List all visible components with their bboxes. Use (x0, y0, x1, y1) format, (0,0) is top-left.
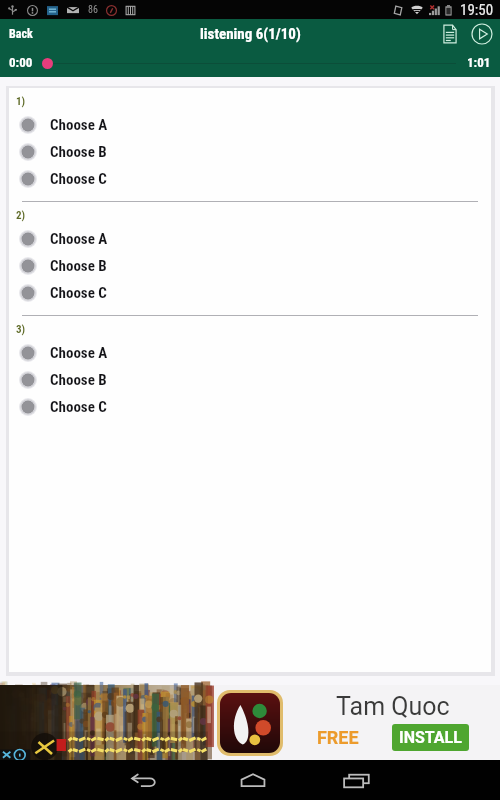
button[interactable]: Back (114, 760, 174, 800)
button[interactable]: Choose A (9, 225, 491, 252)
staticText: 86 (88, 4, 98, 16)
button[interactable]: Play (469, 21, 495, 47)
button[interactable]: Choose A (9, 339, 491, 366)
staticText: Choose A (50, 116, 108, 134)
staticText: Choose A (50, 344, 108, 362)
staticText: 19:50 (460, 1, 494, 19)
staticText: Choose B (50, 371, 107, 389)
button[interactable]: Advertisement: Tam Quoc (0, 685, 500, 760)
staticText: Choose C (50, 398, 107, 416)
staticText: Choose B (50, 257, 107, 275)
button[interactable]: Choose C (9, 393, 491, 420)
staticText: Choose C (50, 170, 107, 188)
button[interactable]: Choose C (9, 165, 491, 192)
staticText: 0:00 (9, 55, 33, 70)
staticText: 3) (16, 323, 26, 336)
button[interactable]: Choose A (9, 111, 491, 138)
button[interactable]: Home (223, 760, 283, 800)
button[interactable]: Choose C (9, 279, 491, 306)
staticText: Choose C (50, 284, 107, 302)
staticText: 2) (16, 209, 26, 222)
staticText: Tam Quoc (336, 692, 450, 721)
staticText: FREE (317, 727, 359, 748)
button[interactable]: INSTALL (392, 724, 469, 751)
button[interactable]: Seek position (42, 56, 456, 70)
staticText: Back (9, 27, 33, 41)
button[interactable]: Transcript (437, 21, 463, 47)
staticText: INSTALL (399, 728, 462, 747)
button[interactable]: Choose B (9, 138, 491, 165)
button[interactable]: Choose B (9, 366, 491, 393)
staticText: Choose B (50, 143, 107, 161)
staticText: 1:01 (467, 55, 491, 70)
button[interactable]: Back (0, 21, 42, 47)
button[interactable]: Recent apps (327, 760, 387, 800)
staticText: listening 6(1/10) (200, 25, 301, 43)
button[interactable]: Choose B (9, 252, 491, 279)
staticText: 1) (16, 95, 26, 108)
staticText: Choose A (50, 230, 108, 248)
